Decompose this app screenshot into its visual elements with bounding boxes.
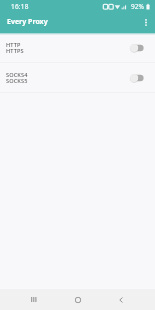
button[interactable]: Toggle proxy <box>130 41 144 55</box>
button[interactable]: More options <box>137 13 155 31</box>
button[interactable]: Recents <box>21 289 47 310</box>
button[interactable]: Toggle proxy <box>130 71 144 85</box>
button[interactable]: SOCKS4 SOCKS5 <box>0 63 155 92</box>
staticText: HTTP HTTPS <box>6 41 130 54</box>
staticText: SOCKS4 SOCKS5 <box>6 71 130 84</box>
button[interactable]: Back <box>108 289 134 310</box>
button[interactable]: Home <box>65 289 91 310</box>
staticText: 16:18 <box>11 2 29 11</box>
button[interactable]: HTTP HTTPS <box>0 33 155 62</box>
staticText: 92% <box>131 2 144 11</box>
staticText: Every Proxy <box>7 17 48 27</box>
